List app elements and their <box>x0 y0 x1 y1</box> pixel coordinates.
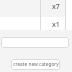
button[interactable] <box>0 17 72 30</box>
button[interactable]: create new category <box>11 59 60 70</box>
staticText: x7 <box>52 2 60 12</box>
button[interactable]: x7 <box>44 2 68 12</box>
button[interactable]: x1 <box>44 20 68 30</box>
staticText: create new category <box>13 61 59 68</box>
button[interactable]: Category name <box>1 37 69 48</box>
staticText: x1 <box>52 20 60 30</box>
